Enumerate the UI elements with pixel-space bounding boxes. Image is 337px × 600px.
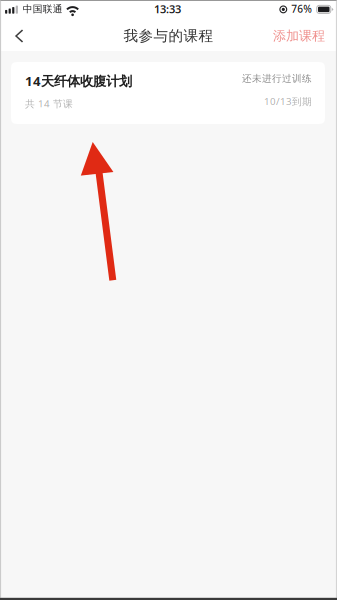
staticText: 76% (291, 2, 312, 15)
staticText: 13:33 (154, 2, 181, 16)
staticText: 添加课程 (273, 28, 325, 44)
staticText: 我参与的课程 (123, 27, 213, 45)
staticText: 14天纤体收腹计划 (25, 72, 132, 89)
button[interactable]: 返回 (0, 21, 38, 51)
staticText: 还未进行过训练 (242, 73, 312, 84)
staticText: 10/13到期 (264, 95, 312, 108)
staticText: 中国联通 (23, 3, 63, 15)
staticText: 共 14 节课 (25, 97, 73, 110)
button[interactable]: 添加课程 (265, 21, 337, 51)
button[interactable]: 14天纤体收腹计划 (11, 62, 325, 124)
